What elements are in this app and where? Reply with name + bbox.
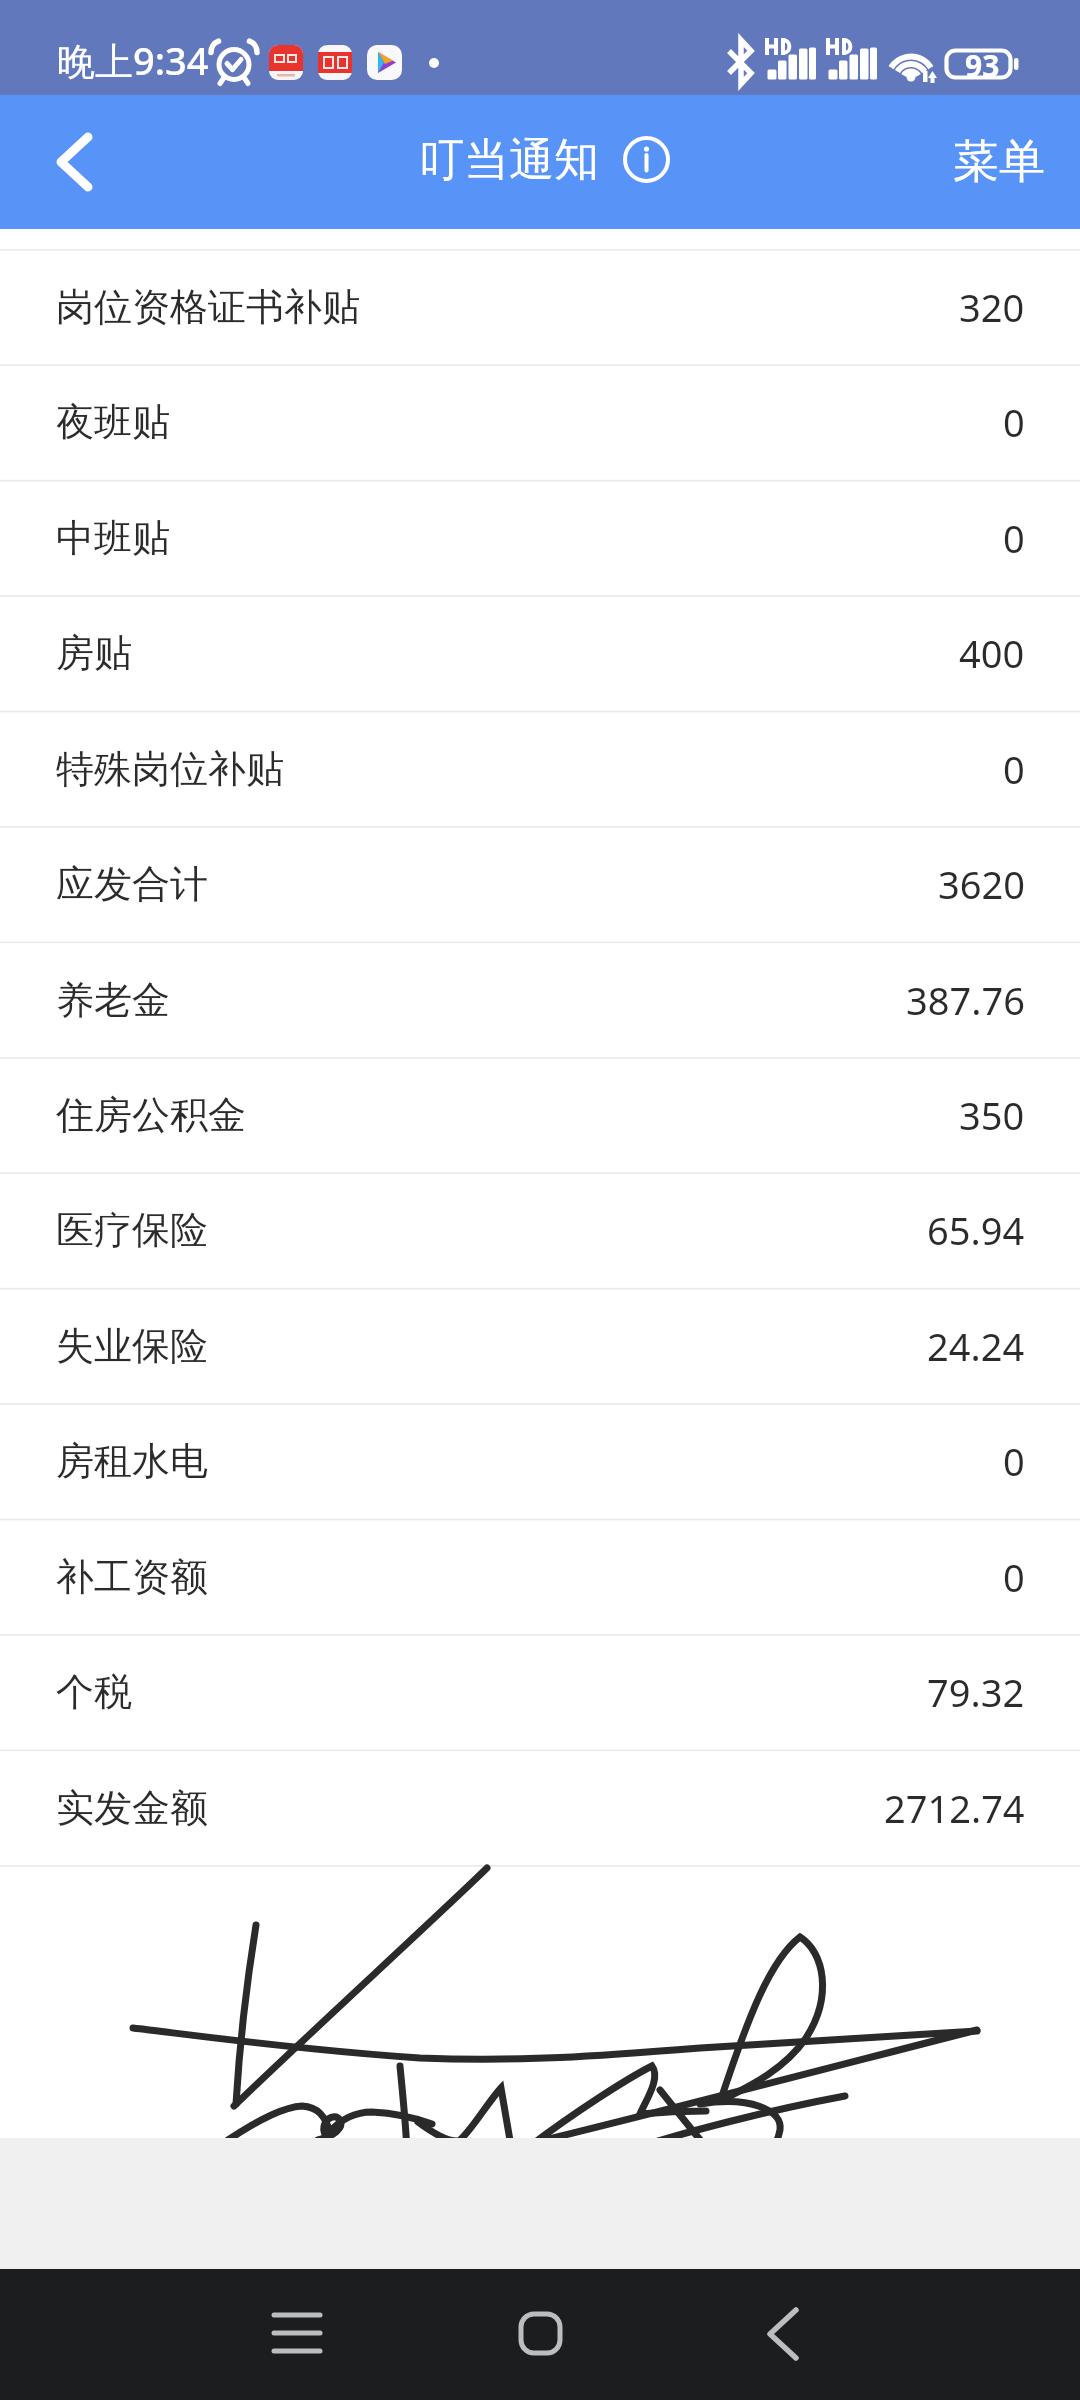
button[interactable]: Back [0, 95, 150, 229]
button[interactable]: 夜班贴 [0, 364, 1080, 479]
staticText: 实发金额 [56, 1784, 208, 1832]
staticText: 350 [959, 1089, 1025, 1141]
button[interactable]: 住房公积金 [0, 1057, 1080, 1172]
staticText: 320 [959, 281, 1025, 333]
button[interactable]: 个税 [0, 1634, 1080, 1749]
staticText: 夜班贴 [56, 398, 170, 446]
staticText: 93 [965, 45, 1000, 86]
staticText: 79.32 [927, 1666, 1025, 1718]
staticText: 菜单 [953, 133, 1045, 191]
button[interactable]: 实发金额 [0, 1750, 1080, 1865]
staticText: 个税 [56, 1668, 132, 1716]
button[interactable]: 中班贴 [0, 480, 1080, 595]
button[interactable]: Back [723, 2269, 843, 2400]
staticText: 400 [959, 627, 1025, 679]
staticText: 特殊岗位补贴 [56, 745, 284, 793]
staticText: 房租水电 [56, 1437, 208, 1485]
staticText: 养老金 [56, 976, 170, 1024]
button[interactable]: 房贴 [0, 595, 1080, 710]
button[interactable]: 房租水电 [0, 1403, 1080, 1518]
staticText: 叮当通知 [419, 132, 599, 189]
button[interactable]: 养老金 [0, 942, 1080, 1057]
staticText: 医疗保险 [56, 1206, 208, 1254]
staticText: 0 [1003, 1551, 1025, 1603]
staticText: 晚上9:34 [57, 34, 209, 86]
staticText: 65.94 [927, 1204, 1025, 1256]
staticText: 补工资额 [56, 1553, 208, 1601]
staticText: 387.76 [906, 974, 1025, 1026]
staticText: 岗位资格证书补贴 [56, 283, 360, 331]
staticText: 2712.74 [884, 1782, 1025, 1834]
staticText: 0 [1003, 743, 1025, 795]
staticText: 3620 [938, 858, 1025, 910]
button[interactable]: 应发合计 [0, 826, 1080, 941]
staticText: 中班贴 [56, 514, 170, 562]
staticText: 住房公积金 [56, 1091, 246, 1139]
staticText: 0 [1003, 1435, 1025, 1487]
staticText: 应发合计 [56, 860, 208, 908]
button[interactable]: 补工资额 [0, 1519, 1080, 1634]
button[interactable]: 特殊岗位补贴 [0, 711, 1080, 826]
button[interactable]: 失业保险 [0, 1288, 1080, 1403]
staticText: 失业保险 [56, 1322, 208, 1370]
button[interactable]: Home [480, 2269, 600, 2400]
button[interactable]: 菜单 [913, 95, 1080, 229]
staticText: 24.24 [927, 1320, 1025, 1372]
staticText: 0 [1003, 512, 1025, 564]
button[interactable]: Recent apps [237, 2269, 357, 2400]
staticText: 房贴 [56, 629, 132, 677]
staticText: 0 [1003, 396, 1025, 448]
button[interactable]: 医疗保险 [0, 1172, 1080, 1287]
button[interactable]: 岗位资格证书补贴 [0, 249, 1080, 364]
